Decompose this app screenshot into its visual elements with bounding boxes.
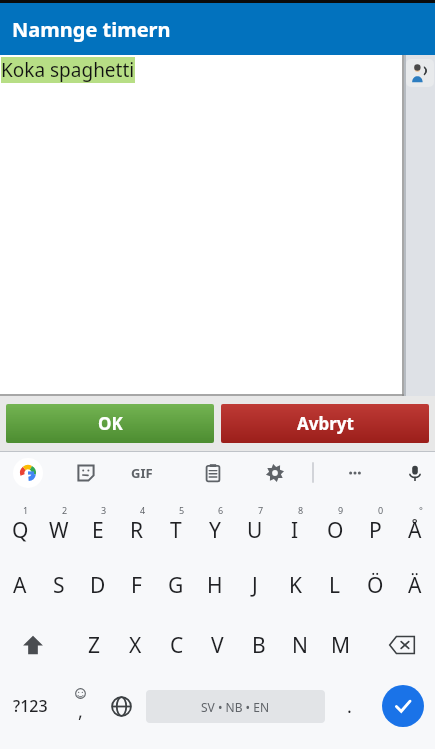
button[interactable]: X <box>115 615 156 675</box>
staticText: . <box>347 694 352 719</box>
button[interactable]: Comma and emoji <box>60 675 101 737</box>
staticText: 0 <box>378 504 384 516</box>
button[interactable]: 5 <box>156 494 195 555</box>
staticText: Å <box>408 516 422 545</box>
staticText: OK <box>98 412 123 435</box>
staticText: 1 <box>23 504 29 516</box>
staticText: D <box>90 571 106 600</box>
staticText: T <box>170 516 182 545</box>
staticText: J <box>252 571 258 600</box>
staticText: O <box>327 516 344 545</box>
staticText: E <box>92 516 104 545</box>
button[interactable]: Settings <box>263 461 287 485</box>
button[interactable]: Stickers <box>74 461 98 485</box>
staticText: 5 <box>179 504 185 516</box>
button[interactable]: Z <box>74 615 115 675</box>
staticText: 9 <box>338 504 344 516</box>
staticText: ?123 <box>13 695 48 717</box>
button[interactable]: 9 <box>315 494 355 555</box>
staticText: 6 <box>218 504 224 516</box>
button[interactable]: Google <box>13 458 43 488</box>
staticText: L <box>329 571 341 600</box>
button[interactable]: Avbryt <box>221 404 429 443</box>
staticText: N <box>292 631 308 660</box>
staticText: , <box>78 699 83 724</box>
button[interactable]: V <box>197 615 238 675</box>
button[interactable]: M <box>320 615 361 675</box>
button[interactable]: Backspace <box>369 615 435 675</box>
staticText: U <box>247 516 263 545</box>
staticText: Z <box>88 631 101 660</box>
staticText: Namnge timern <box>12 16 171 43</box>
button[interactable]: ?123 <box>0 675 60 737</box>
button[interactable]: Voice input <box>403 461 427 485</box>
button[interactable]: ° <box>395 494 435 555</box>
staticText: Ö <box>367 571 384 600</box>
button[interactable]: N <box>279 615 320 675</box>
button[interactable]: F <box>117 555 156 615</box>
button[interactable]: 8 <box>275 494 315 555</box>
button[interactable]: A <box>0 555 39 615</box>
button[interactable]: H <box>195 555 235 615</box>
staticText: I <box>291 516 299 545</box>
button[interactable]: G <box>156 555 195 615</box>
button[interactable]: B <box>238 615 279 675</box>
staticText: W <box>49 516 69 545</box>
button[interactable]: Enter <box>382 685 424 727</box>
staticText: F <box>131 571 142 600</box>
button[interactable]: S <box>39 555 78 615</box>
button[interactable]: 7 <box>235 494 275 555</box>
button[interactable]: Voice input <box>406 59 434 87</box>
staticText: C <box>170 631 184 660</box>
button[interactable]: Change language <box>101 675 142 737</box>
button[interactable]: Clipboard <box>201 461 225 485</box>
button[interactable]: Ö <box>355 555 395 615</box>
staticText: ° <box>419 504 423 516</box>
staticText: 7 <box>258 504 264 516</box>
staticText: 4 <box>140 504 146 516</box>
staticText: SV • NB • EN <box>201 699 270 715</box>
staticText: B <box>252 631 266 660</box>
button[interactable]: GIF <box>131 464 153 482</box>
staticText: Y <box>209 516 221 545</box>
button[interactable]: 4 <box>117 494 156 555</box>
button[interactable]: 1 <box>0 494 39 555</box>
button[interactable]: Shift <box>0 615 66 675</box>
staticText: V <box>211 631 224 660</box>
staticText: S <box>53 571 65 600</box>
button[interactable]: SV • NB • EN <box>146 690 325 723</box>
staticText: M <box>331 631 351 660</box>
staticText: X <box>129 631 142 660</box>
staticText: 3 <box>101 504 107 516</box>
button[interactable]: 0 <box>355 494 395 555</box>
staticText: Ä <box>408 571 422 600</box>
button[interactable]: L <box>315 555 355 615</box>
button[interactable]: J <box>235 555 275 615</box>
staticText: K <box>289 571 302 600</box>
button[interactable]: D <box>78 555 117 615</box>
button[interactable]: More options <box>343 461 367 485</box>
staticText: 8 <box>298 504 304 516</box>
staticText: 2 <box>62 504 68 516</box>
staticText: GIF <box>131 464 153 482</box>
button[interactable]: 6 <box>195 494 235 555</box>
staticText: Q <box>12 516 29 545</box>
button[interactable]: OK <box>6 404 214 443</box>
staticText: R <box>130 516 144 545</box>
button[interactable]: K <box>275 555 315 615</box>
button[interactable]: Ä <box>395 555 435 615</box>
staticText: H <box>207 571 223 600</box>
button[interactable]: 2 <box>39 494 78 555</box>
button[interactable]: . <box>329 675 370 737</box>
staticText: A <box>13 571 27 600</box>
staticText: Koka spaghetti <box>1 57 135 83</box>
staticText: P <box>369 516 382 545</box>
staticText: Avbryt <box>297 412 354 435</box>
button[interactable]: C <box>156 615 197 675</box>
button[interactable]: 3 <box>78 494 117 555</box>
staticText: G <box>168 571 184 600</box>
